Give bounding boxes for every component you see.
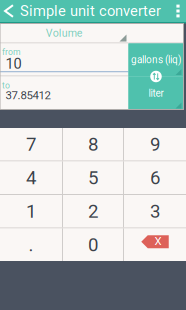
button[interactable]: 1 — [0, 195, 62, 227]
button[interactable]: 5 — [63, 161, 123, 194]
staticText: 1 — [26, 200, 36, 222]
staticText: 0 — [88, 234, 98, 256]
staticText: 10 — [5, 55, 21, 72]
button[interactable]: 9 — [124, 128, 186, 160]
button[interactable]: More options — [171, 0, 185, 22]
staticText: gallons (liq) — [131, 54, 181, 66]
staticText: . — [28, 234, 33, 256]
staticText: liter — [148, 87, 163, 99]
button[interactable]: 4 — [0, 161, 62, 194]
button[interactable]: To unit: liter — [128, 77, 183, 109]
staticText: Simple unit converter — [20, 2, 161, 20]
staticText: 4 — [26, 167, 36, 189]
button[interactable]: From unit: gallons (liq) — [128, 43, 183, 76]
button[interactable]: 2 — [63, 195, 123, 227]
staticText: 2 — [88, 200, 98, 222]
button[interactable]: . — [0, 228, 62, 261]
staticText: 9 — [150, 133, 160, 155]
staticText: 3 — [150, 200, 160, 222]
staticText: 6 — [150, 167, 160, 189]
staticText: from — [2, 47, 21, 57]
button[interactable]: 3 — [124, 195, 186, 227]
button[interactable]: Swap units — [148, 68, 164, 84]
staticText: 7 — [26, 133, 36, 155]
staticText: 37.85412 — [5, 89, 50, 102]
button[interactable]: 0 — [63, 228, 123, 261]
button[interactable]: Delete — [124, 228, 186, 261]
staticText: X — [154, 235, 161, 248]
staticText: Volume — [46, 27, 83, 39]
button[interactable]: 6 — [124, 161, 186, 194]
staticText: 8 — [88, 133, 98, 155]
staticText: to — [2, 80, 10, 91]
staticText: 5 — [88, 167, 98, 189]
button[interactable]: Category: Volume — [0, 23, 128, 42]
button[interactable]: 8 — [63, 128, 123, 160]
button[interactable]: 7 — [0, 128, 62, 160]
button[interactable]: Navigate up — [0, 0, 18, 22]
